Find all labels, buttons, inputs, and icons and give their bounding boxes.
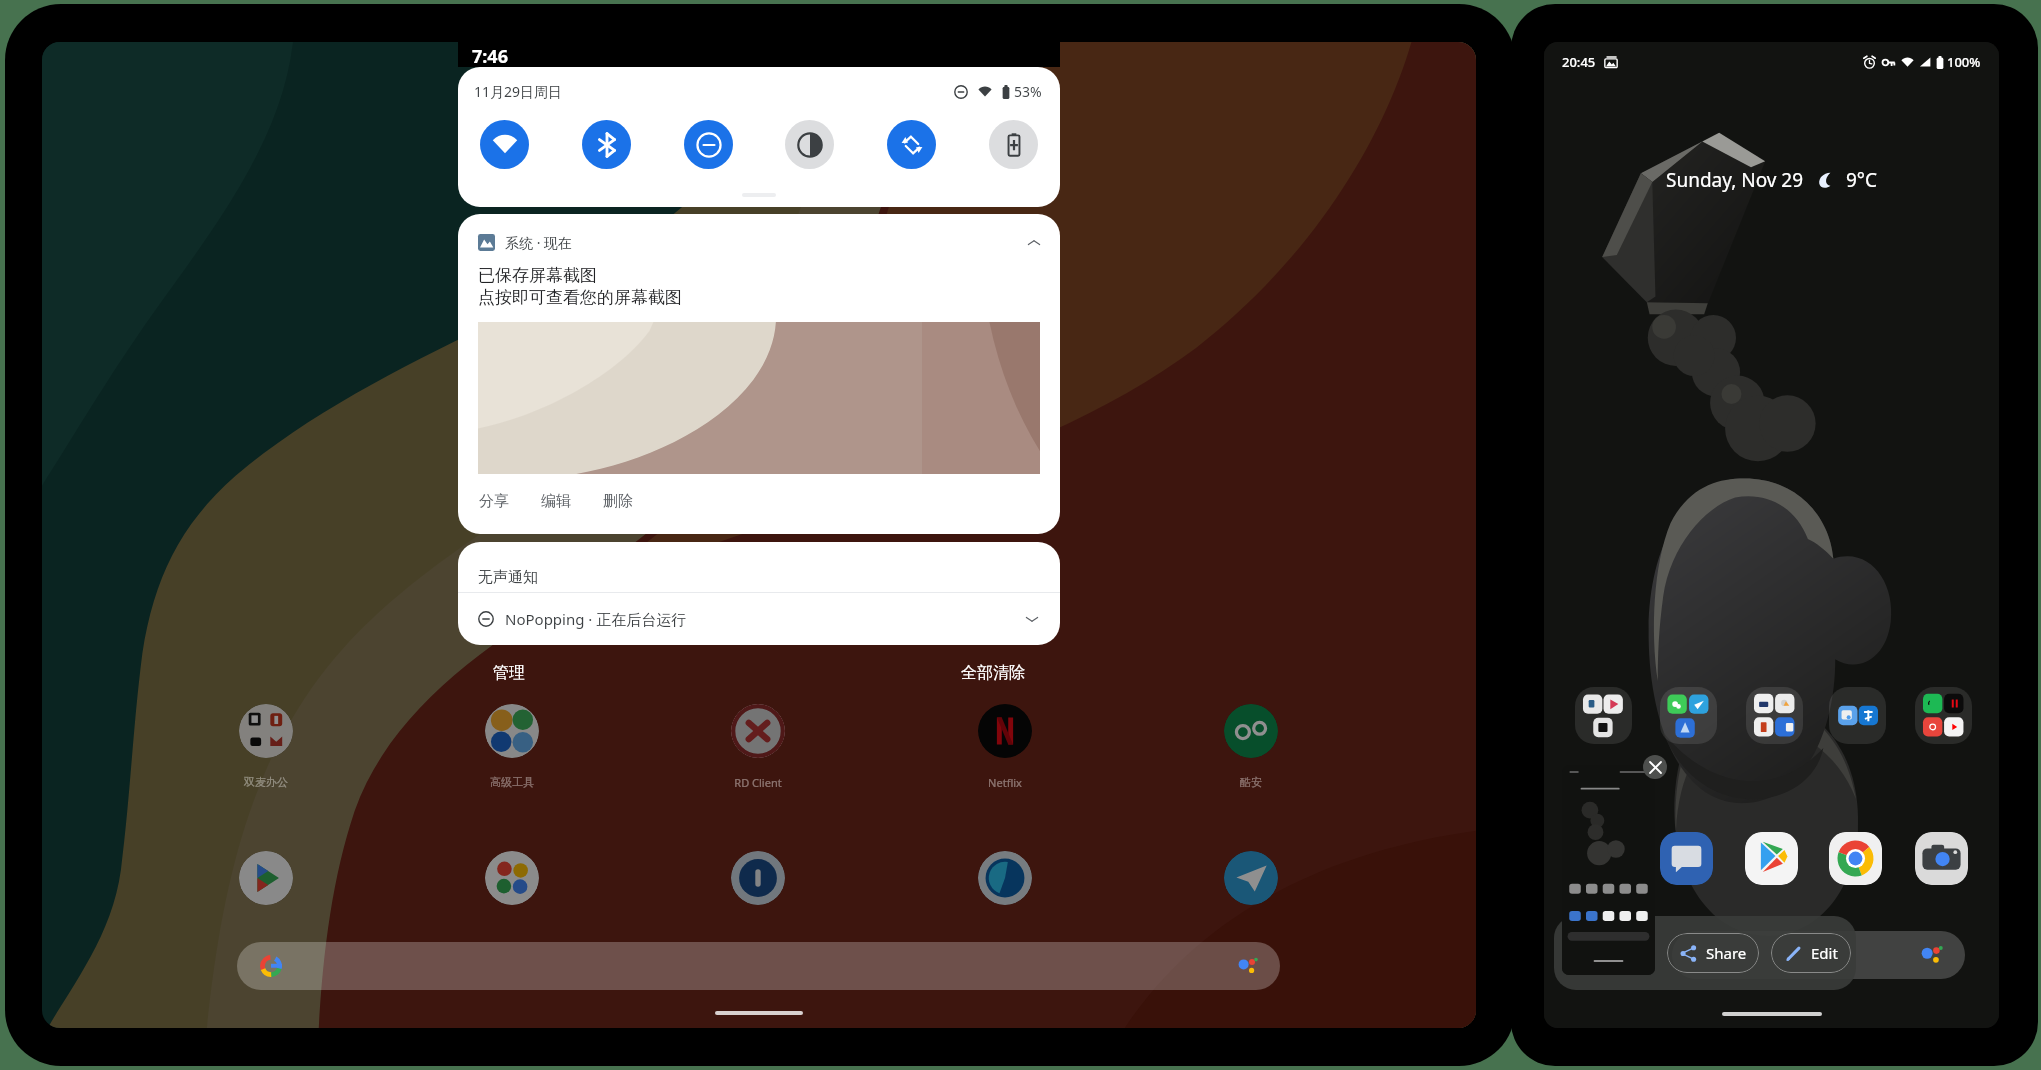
button[interactable]: App 9 <box>978 851 1032 905</box>
staticText: 全部清除 <box>961 663 1025 683</box>
button[interactable]: RD Client <box>731 704 785 758</box>
button[interactable]: Screenshot preview <box>1562 765 1655 975</box>
button[interactable]: App 8 <box>731 851 785 905</box>
button[interactable]: 删除 <box>594 487 642 516</box>
button[interactable]: Folder 3 <box>1746 687 1803 744</box>
staticText: Edit <box>1811 943 1838 963</box>
button[interactable]: 双麦办公 <box>239 704 293 758</box>
button[interactable]: Folder 2 <box>1660 687 1717 744</box>
button[interactable]: App 6 <box>239 851 293 905</box>
button[interactable]: Battery saver <box>989 120 1038 169</box>
staticText: 无声通知 <box>478 568 538 587</box>
button[interactable]: Do not disturb <box>684 120 733 169</box>
button[interactable]: 管理 <box>487 657 531 689</box>
staticText: 管理 <box>493 663 525 683</box>
button[interactable]: 系统 · 现在 <box>458 214 1060 534</box>
button[interactable]: Share <box>1667 933 1759 973</box>
staticText: RD Client <box>688 775 828 790</box>
staticText: 20:45 <box>1562 53 1596 71</box>
button[interactable]: 高级工具 <box>485 704 539 758</box>
staticText: 编辑 <box>541 492 571 511</box>
staticText: 53% <box>1014 82 1042 101</box>
button[interactable]: Search <box>237 942 1280 990</box>
button[interactable]: Folder 5 <box>1915 687 1972 744</box>
staticText: 删除 <box>603 492 633 511</box>
button[interactable]: App 7 <box>485 851 539 905</box>
button[interactable]: App <box>1660 832 1713 885</box>
staticText: Sunday, Nov 29 <box>1666 167 1804 193</box>
staticText: 酷安 <box>1181 775 1321 789</box>
button[interactable]: Folder 4 <box>1829 687 1886 744</box>
staticText: 11月29日周日 <box>474 82 563 101</box>
button[interactable]: 酷安 <box>1224 704 1278 758</box>
button[interactable]: App 10 <box>1224 851 1278 905</box>
button[interactable]: App <box>1829 832 1882 885</box>
button[interactable]: NoPopping · 正在后台运行 <box>458 593 1060 645</box>
button[interactable]: 编辑 <box>532 487 580 516</box>
staticText: 已保存屏幕截图 <box>478 265 597 286</box>
button[interactable]: App <box>1915 832 1968 885</box>
staticText: Netflix <box>935 775 1075 790</box>
staticText: 100% <box>1947 53 1981 71</box>
button[interactable]: Bluetooth <box>582 120 631 169</box>
button[interactable]: Search <box>1672 931 1965 979</box>
button[interactable]: Auto rotate <box>887 120 936 169</box>
button[interactable]: Folder 1 <box>1575 687 1632 744</box>
button[interactable]: 全部清除 <box>955 657 1031 689</box>
staticText: Share <box>1706 943 1747 963</box>
staticText: 分享 <box>479 492 509 511</box>
staticText: 双麦办公 <box>196 775 336 789</box>
staticText: 高级工具 <box>442 775 582 789</box>
button[interactable]: Dark theme <box>785 120 834 169</box>
staticText: 系统 · 现在 <box>505 233 573 252</box>
button[interactable]: Edit <box>1771 933 1851 973</box>
staticText: 9°C <box>1846 167 1878 193</box>
staticText: 7:46 <box>472 44 508 69</box>
button[interactable]: Netflix <box>978 704 1032 758</box>
staticText: 点按即可查看您的屏幕截图 <box>478 287 682 308</box>
button[interactable]: 分享 <box>470 487 518 516</box>
staticText: NoPopping · 正在后台运行 <box>505 609 687 629</box>
button[interactable]: Collapse notification <box>1026 235 1042 251</box>
button[interactable]: Dismiss <box>1643 755 1667 779</box>
button[interactable]: App <box>1745 832 1798 885</box>
button[interactable]: Wi-Fi <box>480 120 529 169</box>
